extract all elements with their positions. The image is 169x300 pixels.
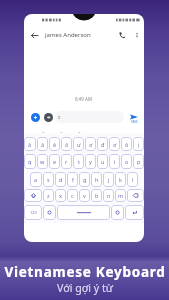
staticText: â	[41, 141, 45, 148]
staticText: b	[95, 192, 99, 199]
button[interactable]: Shift	[24, 189, 42, 202]
staticText: ă	[28, 141, 32, 148]
staticText: l	[132, 176, 134, 183]
staticText: v	[83, 192, 86, 199]
button[interactable]: Send SMS	[125, 114, 143, 124]
button[interactable]: m	[115, 189, 126, 202]
button[interactable]: ă	[24, 137, 36, 151]
staticText: ô	[125, 141, 129, 148]
button[interactable]: d	[55, 172, 66, 187]
staticText: z	[58, 114, 61, 121]
button[interactable]: 123	[24, 205, 42, 220]
button[interactable]: f	[67, 172, 78, 187]
staticText: e	[53, 158, 57, 165]
staticText: g	[83, 176, 87, 183]
button[interactable]: ị	[133, 137, 144, 151]
button[interactable]: Enter	[125, 205, 144, 220]
staticText: ô	[65, 141, 69, 148]
staticText: ư	[77, 141, 81, 148]
staticText: đ	[101, 141, 105, 148]
button[interactable]: đ	[97, 137, 108, 151]
staticText: k	[119, 176, 122, 183]
staticText: Vietnamese Keyboard	[4, 263, 166, 281]
button[interactable]: s	[43, 172, 54, 187]
button[interactable]: More options	[130, 27, 144, 43]
staticText: ơ	[89, 141, 93, 148]
staticText: h	[95, 176, 99, 183]
button[interactable]: Emoji picker	[111, 205, 124, 220]
button[interactable]: ô	[121, 137, 132, 151]
button[interactable]: q	[24, 154, 36, 169]
staticText: ị	[138, 141, 140, 148]
button[interactable]: ơ	[109, 137, 120, 151]
button[interactable]: Back	[24, 27, 45, 43]
staticText: Với gợi ý từ	[57, 281, 113, 295]
staticText: m	[118, 192, 124, 199]
button[interactable]: ê	[49, 137, 60, 151]
button[interactable]: o	[121, 154, 132, 169]
staticText: p	[137, 158, 141, 165]
button[interactable]: Emoji	[43, 205, 56, 220]
staticText: x	[59, 192, 62, 199]
staticText: j	[108, 176, 110, 183]
staticText: james Anderson	[45, 31, 91, 39]
button[interactable]: c	[67, 189, 78, 202]
button[interactable]: Camera	[44, 113, 53, 122]
button[interactable]: ư	[73, 137, 84, 151]
button[interactable]: Call	[114, 27, 130, 43]
button[interactable]: z	[43, 189, 54, 202]
staticText: 123	[30, 210, 37, 215]
button[interactable]: p	[133, 154, 144, 169]
staticText: z	[47, 192, 50, 199]
staticText: y	[89, 158, 92, 165]
staticText: n	[107, 192, 111, 199]
staticText: w	[40, 158, 45, 165]
staticText: q	[28, 158, 32, 165]
staticText: SMS	[131, 120, 138, 124]
button[interactable]: b	[91, 189, 102, 202]
button[interactable]: â	[37, 137, 48, 151]
button[interactable]: w	[37, 154, 48, 169]
button[interactable]: a	[30, 172, 42, 187]
button[interactable]: Space	[57, 205, 110, 220]
staticText: 6:49 AM	[75, 96, 93, 102]
staticText: ơ	[113, 141, 117, 148]
button[interactable]: ơ	[85, 137, 96, 151]
button[interactable]: x	[55, 189, 66, 202]
button[interactable]: ô	[61, 137, 72, 151]
button[interactable]: Add attachment	[31, 113, 40, 122]
staticText: d	[59, 176, 63, 183]
staticText: f	[72, 176, 74, 183]
staticText: i	[114, 158, 116, 165]
button[interactable]: g	[79, 172, 90, 187]
button[interactable]: e	[49, 154, 60, 169]
staticText: o	[125, 158, 129, 165]
button[interactable]: k	[115, 172, 126, 187]
staticText: s	[47, 176, 50, 183]
button[interactable]: i	[109, 154, 120, 169]
button[interactable]: u	[97, 154, 108, 169]
button[interactable]: t	[73, 154, 84, 169]
staticText: zythum zythum zythem	[37, 131, 89, 137]
staticText: a	[34, 176, 38, 183]
button[interactable]: l	[127, 172, 138, 187]
button[interactable]: h	[91, 172, 102, 187]
button[interactable]: j	[103, 172, 114, 187]
button[interactable]: v	[79, 189, 90, 202]
staticText: c	[71, 192, 74, 199]
button[interactable]: Backspace	[127, 189, 144, 202]
button[interactable]: z	[58, 111, 124, 123]
staticText: u	[101, 158, 105, 165]
button[interactable]: y	[85, 154, 96, 169]
button[interactable]: r	[61, 154, 72, 169]
staticText: t	[78, 158, 80, 165]
staticText: ê	[53, 141, 57, 148]
button[interactable]: n	[103, 189, 114, 202]
staticText: r	[65, 158, 68, 165]
